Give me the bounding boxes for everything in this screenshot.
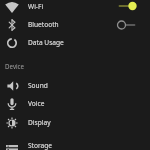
staticText: Display	[28, 118, 51, 127]
staticText: Wi-Fi	[28, 2, 44, 11]
button[interactable]: Storage	[0, 136, 150, 150]
button[interactable]: Data Usage	[0, 33, 150, 52]
button[interactable]: Display	[0, 113, 150, 132]
staticText: Device	[5, 62, 25, 70]
staticText: Bluetooth	[28, 20, 59, 29]
button[interactable]: Wi-Fi	[0, 0, 150, 16]
staticText: Storage	[28, 141, 53, 150]
staticText: Sound	[28, 81, 48, 90]
staticText: Data Usage	[28, 38, 64, 47]
button[interactable]: Sound	[0, 76, 150, 95]
button[interactable]: Voice	[0, 94, 150, 113]
button[interactable]: Bluetooth	[0, 15, 150, 34]
staticText: Voice	[28, 99, 45, 108]
